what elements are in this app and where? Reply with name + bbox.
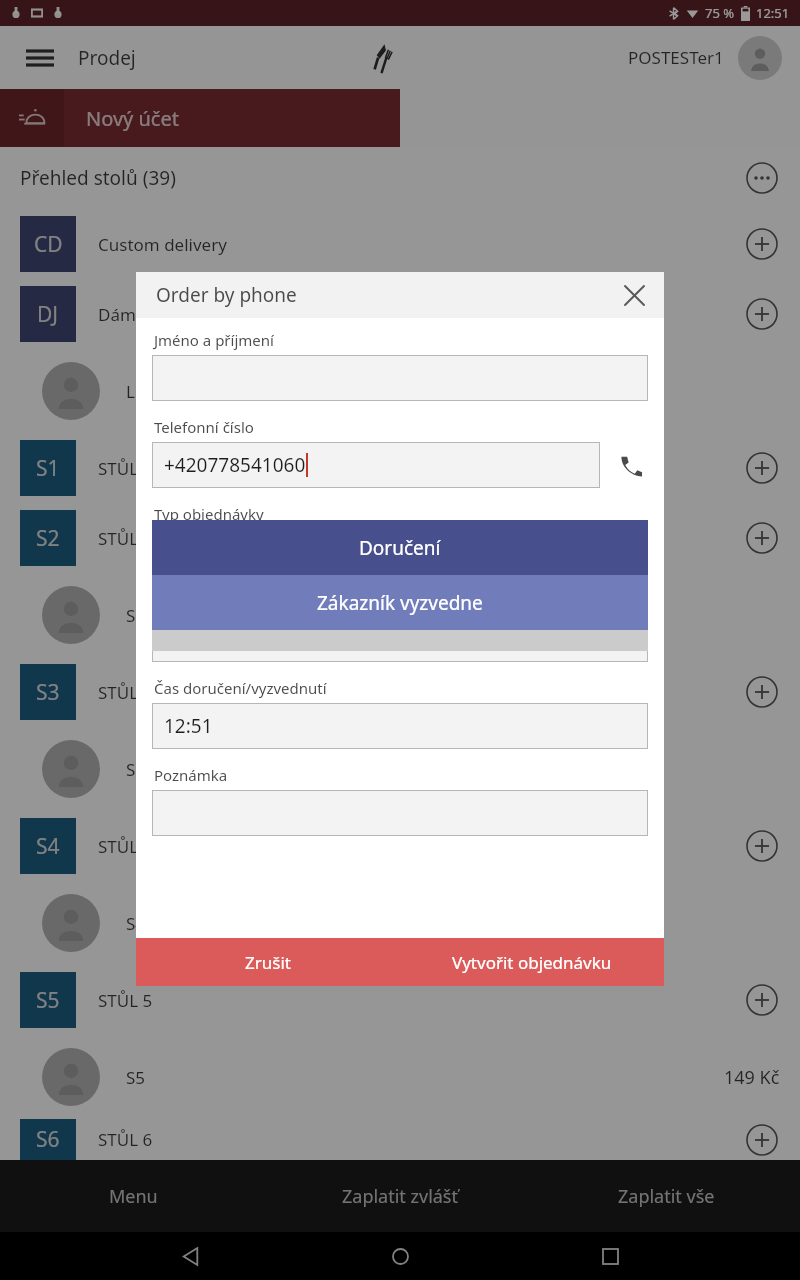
staticText: S3 — [36, 678, 60, 707]
staticText: Zrušit — [245, 951, 291, 974]
button[interactable]: Menu — [0, 1160, 266, 1232]
staticText: Typ objednávky — [154, 504, 264, 524]
staticText: S1 — [36, 454, 60, 483]
staticText: POSTESTer1 — [628, 46, 724, 69]
staticText: Zákazník vyzvedne — [317, 590, 483, 616]
button[interactable]: Recents — [590, 1236, 630, 1276]
staticText: S5 — [126, 1066, 146, 1089]
staticText: Dáme jídlo — [98, 303, 184, 326]
staticText: CD — [34, 230, 63, 259]
staticText: Doručení — [359, 535, 441, 561]
button[interactable] — [152, 529, 648, 575]
staticText: S4 — [36, 832, 60, 861]
staticText: Zaplatit zvlášť — [342, 1184, 458, 1209]
button[interactable]: Close — [616, 277, 652, 313]
button[interactable]: Zákazník vyzvedne — [152, 575, 648, 630]
staticText: Order by phone — [156, 282, 297, 308]
button[interactable]: Orders — [0, 89, 64, 147]
button[interactable]: Vytvořit objednávku — [400, 938, 664, 986]
button[interactable]: S2 — [0, 503, 800, 573]
button[interactable]: 12:51 — [152, 703, 648, 749]
staticText: S4 — [126, 912, 146, 935]
staticText: S2 — [36, 524, 60, 553]
button[interactable]: Add — [744, 226, 780, 262]
button[interactable]: Zrušit — [136, 938, 400, 986]
staticText: STŮL 3 — [98, 681, 153, 704]
button[interactable]: Call — [614, 448, 648, 482]
button[interactable]: Zaplatit vše — [533, 1160, 800, 1232]
button[interactable]: More options — [744, 160, 780, 196]
staticText: Čas doručení/vyzvednutí — [154, 678, 327, 698]
staticText: 149 Kč — [724, 1065, 780, 1090]
button[interactable]: S6 — [0, 1119, 800, 1160]
button[interactable]: Account — [738, 36, 782, 80]
staticText: 12:51 — [164, 713, 213, 739]
button[interactable] — [152, 790, 648, 836]
button[interactable] — [152, 616, 648, 662]
button[interactable]: Add — [744, 828, 780, 864]
staticText: Prodej — [78, 45, 136, 71]
staticText: Jméno a příjmení — [154, 330, 274, 350]
button[interactable]: S4 — [0, 811, 800, 881]
button[interactable]: Add — [744, 982, 780, 1018]
button[interactable]: Add — [744, 450, 780, 486]
button[interactable]: S2 — [0, 573, 800, 657]
staticText: Lukáš — [126, 380, 173, 403]
staticText: Vytvořit objednávku — [452, 951, 612, 974]
staticText: Poznámka — [154, 765, 228, 785]
button[interactable]: S1 — [0, 433, 800, 503]
button[interactable]: S4 — [0, 881, 800, 965]
staticText: Telefonní číslo — [154, 417, 254, 437]
button[interactable]: S3 — [0, 657, 800, 727]
button[interactable]: Menu — [18, 36, 62, 80]
button[interactable] — [152, 355, 648, 401]
button[interactable]: Add — [744, 1122, 780, 1158]
button[interactable]: Doručení — [152, 520, 648, 575]
button[interactable]: S5 — [0, 1035, 800, 1119]
staticText: S5 — [36, 986, 60, 1015]
button[interactable]: CD — [0, 209, 800, 279]
staticText: STŮL 1 — [98, 457, 153, 480]
staticText: 12:51 — [756, 4, 790, 22]
button[interactable]: S5 — [0, 965, 800, 1035]
staticText: Menu — [109, 1184, 158, 1209]
button[interactable]: Lukáš — [0, 349, 800, 433]
staticText: Custom delivery — [98, 233, 227, 256]
staticText: S2 — [126, 604, 146, 627]
button[interactable]: Home — [380, 1236, 420, 1276]
button[interactable]: Back — [170, 1236, 210, 1276]
staticText: +420778541060 — [164, 452, 306, 478]
button[interactable]: Nový účet — [64, 89, 400, 147]
staticText: 75 % — [705, 4, 735, 22]
button[interactable]: Add — [744, 520, 780, 556]
button[interactable]: Add — [744, 674, 780, 710]
staticText: S3 — [126, 758, 146, 781]
staticText: Přehled stolů (39) — [20, 165, 176, 191]
button[interactable]: Add — [744, 296, 780, 332]
button[interactable]: S3 — [0, 727, 800, 811]
button[interactable]: Restaurant — [360, 36, 404, 80]
button[interactable]: Zaplatit zvlášť — [266, 1160, 533, 1232]
button[interactable]: DJ — [0, 279, 800, 349]
button[interactable]: +420778541060 — [152, 442, 600, 488]
staticText: STŮL 6 — [98, 1128, 153, 1151]
staticText: STŮL 5 — [98, 989, 153, 1012]
staticText: Nový účet — [86, 105, 179, 132]
staticText: S6 — [36, 1125, 60, 1154]
staticText: Zaplatit vše — [618, 1184, 715, 1209]
staticText: STŮL 2 — [98, 527, 153, 550]
staticText: DJ — [37, 300, 59, 329]
staticText: STŮL 4 — [98, 835, 153, 858]
